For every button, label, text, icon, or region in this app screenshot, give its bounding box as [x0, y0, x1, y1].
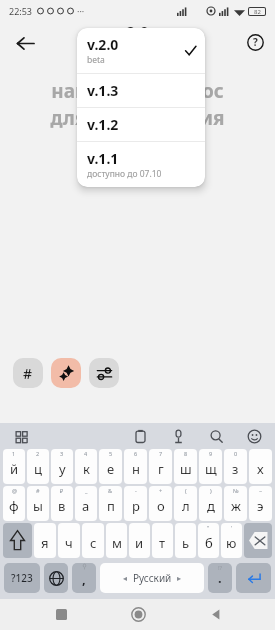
staticText: ": [207, 524, 210, 531]
staticText: м: [112, 534, 122, 552]
staticText: ~: [259, 487, 263, 494]
button[interactable]: Change language: [44, 563, 68, 593]
button[interactable]: 6: [124, 449, 147, 484]
button[interactable]: ": [198, 523, 219, 558]
button[interactable]: х: [249, 449, 272, 484]
button[interactable]: _: [75, 486, 97, 521]
staticText: н: [132, 460, 140, 478]
staticText: с: [90, 534, 97, 552]
staticText: _: [85, 487, 88, 494]
button[interactable]: 8: [174, 449, 197, 484]
staticText: доступно до 07.10: [87, 168, 162, 180]
staticText: Русский: [133, 571, 172, 585]
staticText: 7: [159, 450, 163, 457]
button[interactable]: т: [152, 523, 173, 558]
staticText: ': [231, 524, 233, 531]
staticText: -: [135, 487, 137, 494]
button[interactable]: ч: [58, 523, 80, 558]
button[interactable]: ₽: [51, 486, 73, 521]
button[interactable]: [3, 523, 32, 558]
button[interactable]: Back: [10, 28, 40, 58]
button[interactable]: 1: [3, 449, 25, 484]
button[interactable]: 4: [75, 449, 97, 484]
staticText: д: [207, 497, 215, 515]
staticText: щ: [205, 460, 217, 478]
button[interactable]: Voice input: [168, 426, 188, 446]
button[interactable]: Tags: [13, 358, 43, 388]
button[interactable]: с: [82, 523, 104, 558]
staticText: ь: [182, 534, 190, 552]
staticText: к: [83, 460, 90, 478]
button[interactable]: &: [99, 486, 122, 521]
button[interactable]: ?123: [4, 563, 40, 593]
staticText: ш: [180, 460, 192, 478]
button[interactable]: Search: [206, 426, 226, 446]
staticText: +: [159, 487, 163, 494]
button[interactable]: ,: [72, 563, 96, 593]
staticText: у: [59, 460, 66, 478]
staticText: #: [36, 487, 40, 494]
button[interactable]: ': [221, 523, 242, 558]
button[interactable]: ~: [249, 486, 272, 521]
button[interactable]: Enhance: [51, 358, 81, 388]
button[interactable]: 7: [149, 449, 172, 484]
staticText: &: [108, 487, 113, 494]
button[interactable]: 0: [224, 449, 247, 484]
staticText: @: [12, 487, 17, 494]
button[interactable]: Emoji: [244, 426, 264, 446]
staticText: б: [205, 534, 213, 552]
staticText: ,: [82, 570, 86, 588]
button[interactable]: [244, 523, 272, 558]
button[interactable]: м: [106, 523, 127, 558]
button[interactable]: 3: [51, 449, 73, 484]
button[interactable]: Clipboard: [130, 426, 150, 446]
button[interactable]: v.2.0: [77, 28, 205, 73]
button[interactable]: (: [174, 486, 197, 521]
staticText: ···: [77, 5, 85, 17]
button[interactable]: Help: [243, 30, 267, 54]
button[interactable]: ◂: [100, 563, 204, 593]
button[interactable]: #: [27, 486, 49, 521]
staticText: т: [159, 534, 166, 552]
button[interactable]: .: [208, 563, 232, 593]
button[interactable]: 5: [99, 449, 122, 484]
staticText: р: [132, 497, 140, 515]
staticText: ф: [9, 497, 19, 515]
staticText: л: [182, 497, 190, 515]
staticText: ы: [33, 497, 43, 515]
button[interactable]: -: [124, 486, 147, 521]
button[interactable]: Enter: [236, 563, 271, 593]
button[interactable]: я: [34, 523, 56, 558]
button[interactable]: Back: [198, 599, 232, 630]
staticText: №: [233, 487, 239, 494]
staticText: !?: [218, 564, 223, 572]
button[interactable]: v.1.1: [77, 142, 205, 187]
button[interactable]: и: [129, 523, 150, 558]
staticText: 22:53: [9, 5, 33, 17]
staticText: п: [107, 497, 115, 515]
staticText: г: [158, 460, 164, 478]
button[interactable]: ь: [175, 523, 196, 558]
button[interactable]: v.1.3: [77, 74, 205, 107]
button[interactable]: v.1.2: [77, 108, 205, 141]
button[interactable]: +: [149, 486, 172, 521]
staticText: v.1.2: [87, 115, 119, 134]
button[interactable]: ): [199, 486, 222, 521]
button[interactable]: 9: [199, 449, 222, 484]
button[interactable]: Home: [121, 599, 155, 630]
button[interactable]: Clipboard grid: [11, 426, 31, 446]
staticText: v.1.3: [87, 81, 119, 100]
staticText: 2.0: [126, 22, 149, 44]
button[interactable]: №: [224, 486, 247, 521]
staticText: 2: [36, 450, 40, 457]
staticText: 0: [234, 450, 238, 457]
button[interactable]: Settings: [89, 358, 119, 388]
staticText: и: [135, 534, 144, 552]
button[interactable]: 2: [27, 449, 49, 484]
button[interactable]: @: [3, 486, 25, 521]
staticText: ц: [34, 460, 42, 478]
button[interactable]: Recents: [44, 599, 78, 630]
staticText: #: [23, 364, 33, 383]
staticText: о: [157, 497, 165, 515]
staticText: ?123: [11, 571, 33, 585]
